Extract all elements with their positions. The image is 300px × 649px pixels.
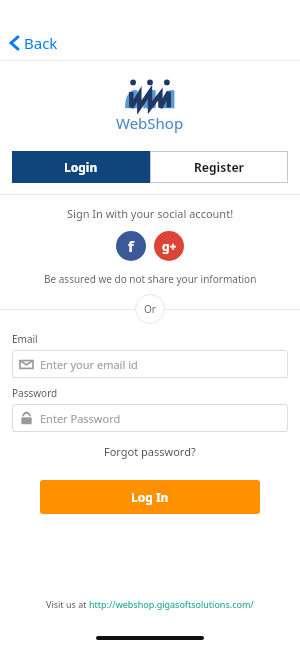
staticText: Enter Password (40, 411, 121, 426)
staticText: Visit us at (46, 598, 89, 610)
button[interactable]: Log In (40, 480, 260, 514)
staticText: Sign In with your social account! (67, 206, 234, 221)
staticText: Or (144, 302, 156, 316)
staticText: http://webshop.gigasoftsolutions.com/ (89, 598, 254, 610)
staticText: Enter your email id (40, 357, 138, 372)
staticText: Login (64, 159, 98, 175)
button[interactable]: Enter Password (12, 404, 288, 432)
staticText: Back (24, 33, 58, 53)
staticText: WebShop (116, 113, 184, 133)
button[interactable]: Back (0, 26, 300, 60)
button[interactable]: http://webshop.gigasoftsolutions.com/ (89, 598, 254, 610)
button[interactable]: Enter your email id (12, 350, 288, 378)
button[interactable]: Forgot password? (98, 441, 202, 462)
staticText: Be assured we do not share your informat… (44, 272, 257, 286)
button[interactable]: Login (12, 151, 150, 183)
staticText: g+ (162, 238, 177, 254)
staticText: Log In (131, 489, 169, 505)
button[interactable]: Sign in with Google Plus (154, 231, 184, 261)
staticText: Forgot password? (104, 444, 196, 459)
button[interactable]: Register (150, 151, 288, 183)
staticText: Password (12, 386, 58, 400)
staticText: f (128, 236, 134, 256)
staticText: Register (194, 159, 244, 175)
button[interactable]: Sign in with Facebook (116, 231, 146, 261)
staticText: Email (12, 332, 38, 346)
